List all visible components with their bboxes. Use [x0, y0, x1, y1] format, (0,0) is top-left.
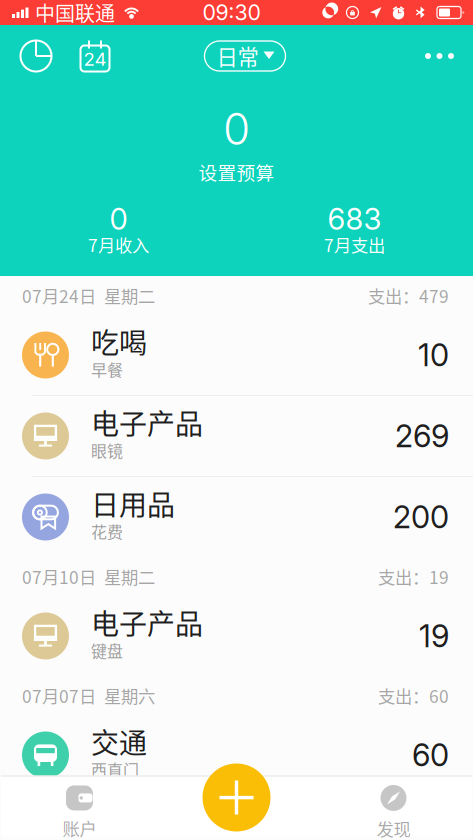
staticText: 电子产品 [91, 402, 203, 443]
staticText: 支出：19 [378, 564, 449, 589]
button[interactable]: 吃喝 [0, 315, 473, 395]
staticText: 0 [223, 102, 250, 155]
staticText: 账户 [62, 815, 96, 840]
staticText: 眼镜 [91, 439, 123, 462]
staticText: 日常 [216, 41, 258, 71]
staticText: 中国联通 [35, 0, 115, 27]
button[interactable]: 账户 [1, 775, 158, 836]
staticText: 200 [393, 498, 449, 535]
button[interactable]: 日常 [204, 41, 285, 71]
button[interactable]: More [417, 39, 462, 73]
button[interactable]: 日用品 [0, 477, 473, 557]
staticText: 60 [412, 736, 449, 773]
staticText: 交通 [91, 721, 147, 762]
staticText: 07月10日 星期二 [22, 564, 155, 589]
button[interactable]: Calendar [73, 33, 117, 78]
button[interactable]: 电子产品 [0, 596, 473, 676]
staticText: 07月07日 星期六 [22, 683, 155, 708]
staticText: 花费 [91, 520, 123, 543]
staticText: 日用品 [91, 483, 175, 524]
staticText: 0 [109, 201, 127, 237]
staticText: 电子产品 [91, 602, 203, 643]
staticText: 07月24日 星期二 [22, 283, 155, 308]
staticText: 支出：60 [378, 683, 449, 708]
staticText: 设置预算 [198, 158, 274, 185]
staticText: 西直门 [91, 758, 139, 781]
staticText: 09:30 [202, 0, 260, 25]
staticText: 7月支出 [324, 232, 385, 257]
staticText: 10 [418, 336, 449, 373]
staticText: 7月收入 [88, 232, 149, 257]
staticText: 683 [327, 201, 381, 237]
button[interactable]: 电子产品 [0, 396, 473, 476]
button[interactable]: 发现 [315, 775, 472, 836]
staticText: 269 [395, 417, 449, 454]
staticText: 早餐 [91, 358, 123, 381]
staticText: 发现 [376, 816, 410, 840]
button[interactable]: Statistics [13, 33, 59, 79]
staticText: 吃喝 [91, 321, 147, 362]
staticText: 19 [419, 617, 449, 654]
staticText: 键盘 [91, 639, 123, 662]
button[interactable]: Add transaction [202, 763, 270, 831]
button[interactable]: 交通 [0, 715, 473, 795]
staticText: 24 [83, 48, 106, 70]
staticText: 支出：479 [368, 283, 449, 308]
